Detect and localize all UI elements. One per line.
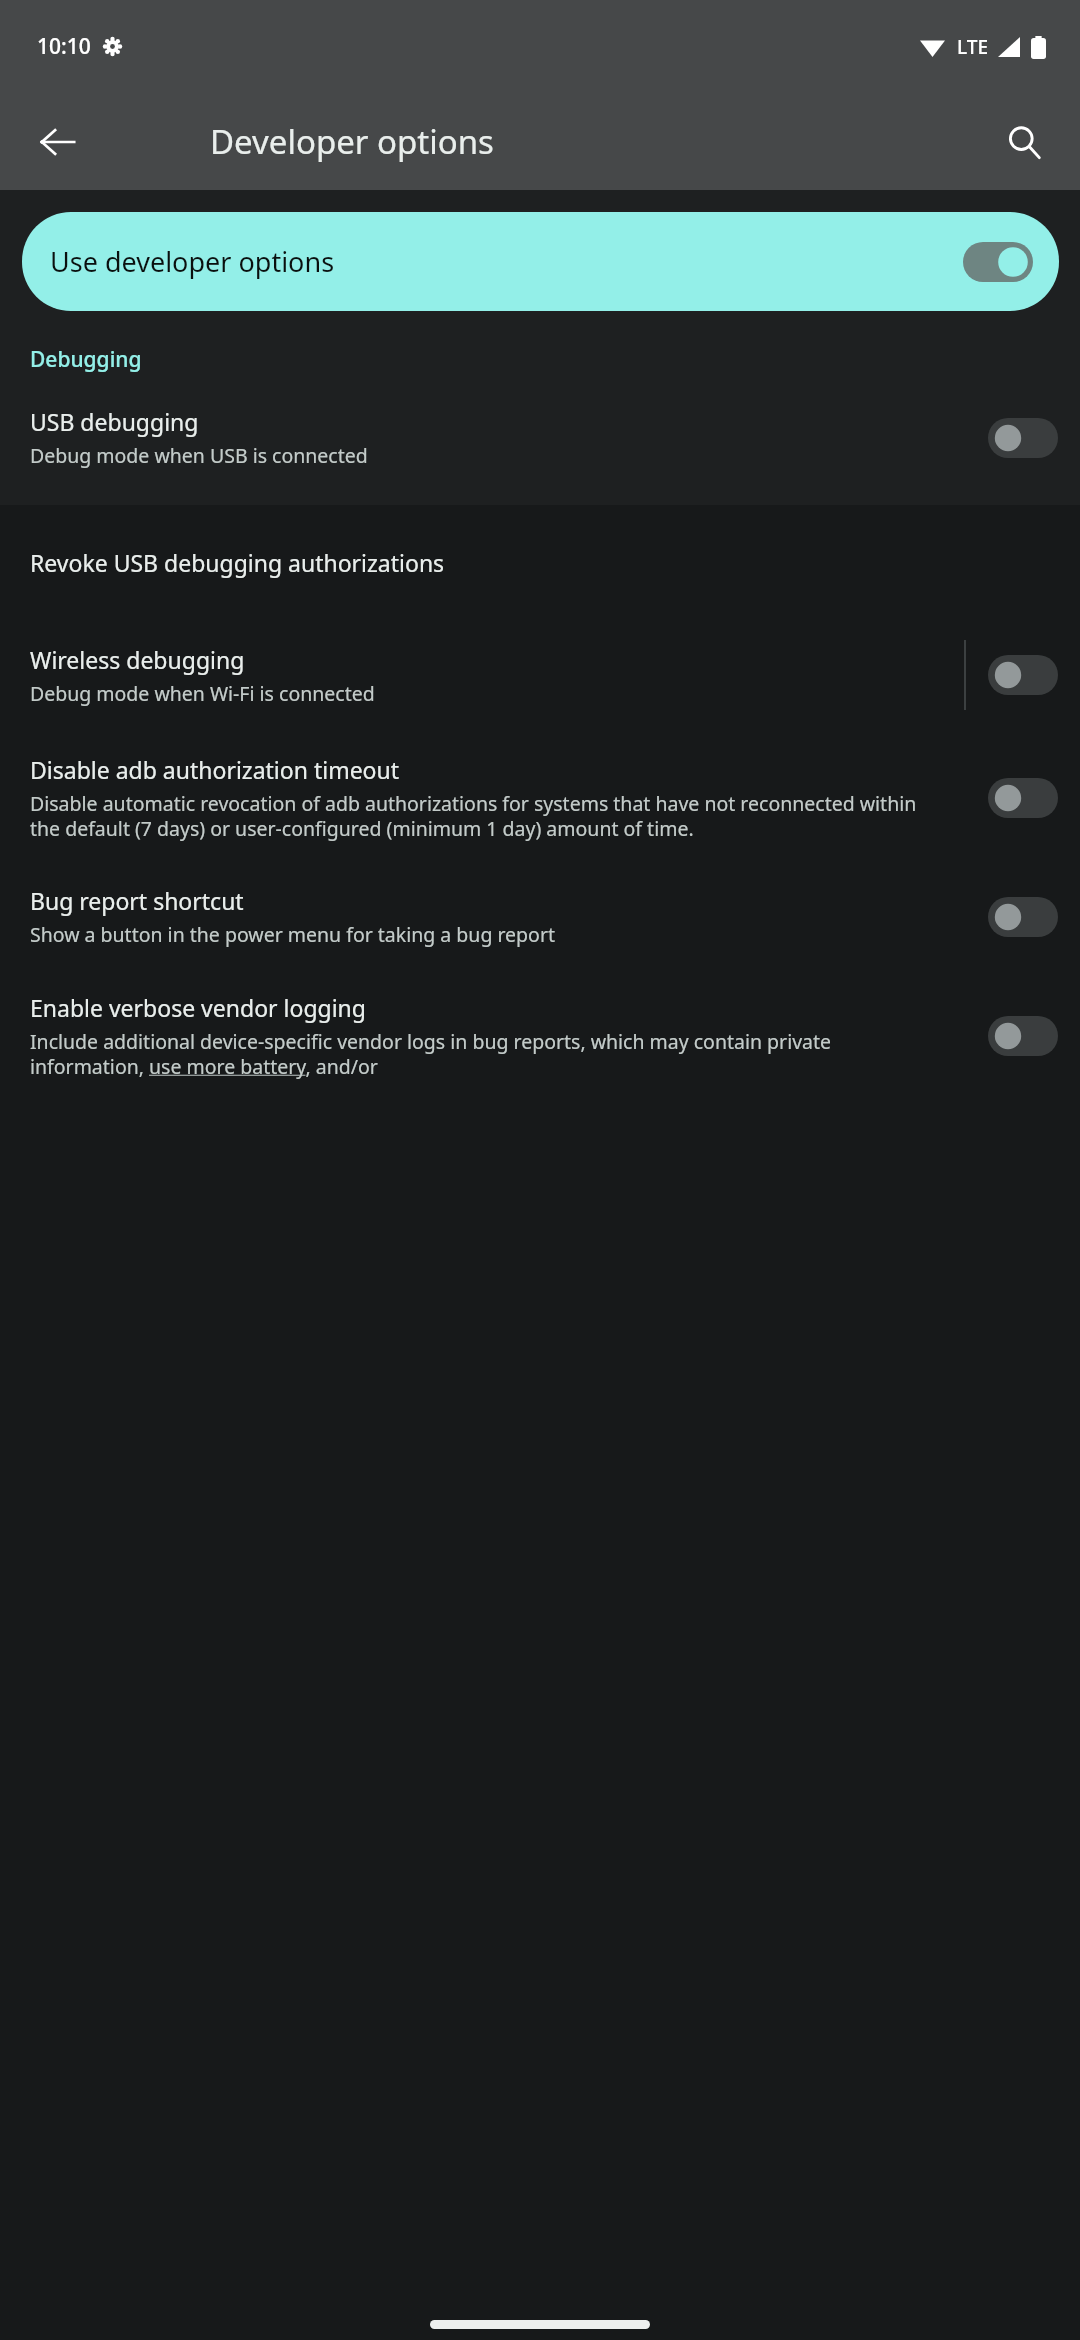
staticText: Wireless debugging <box>30 644 245 675</box>
button[interactable]: Revoke USB debugging authorizations <box>0 505 1080 618</box>
button[interactable]: Wireless debugging <box>0 618 1080 732</box>
staticText: LTE <box>957 34 989 60</box>
staticText: Bug report shortcut <box>30 885 244 916</box>
staticText: Developer options <box>210 119 494 164</box>
staticText: Enable verbose vendor logging <box>30 992 366 1023</box>
button[interactable]: USB debugging <box>0 384 1080 491</box>
staticText: Show a button in the power menu for taki… <box>30 921 555 948</box>
button[interactable]: Back <box>22 106 94 178</box>
button[interactable]: Enable verbose vendor logging <box>0 970 1080 1079</box>
staticText: Debugging <box>30 345 142 374</box>
staticText: Include additional device-specific vendo… <box>30 1028 948 1079</box>
staticText: Disable automatic revocation of adb auth… <box>30 790 948 841</box>
staticText: Use developer options <box>50 243 335 280</box>
staticText: 10:10 <box>37 32 91 61</box>
staticText: USB debugging <box>30 406 199 437</box>
staticText: Revoke USB debugging authorizations <box>30 547 445 578</box>
staticText: Debug mode when Wi-Fi is connected <box>30 680 375 707</box>
button[interactable]: Bug report shortcut <box>0 863 1080 970</box>
button[interactable]: Search <box>988 106 1060 178</box>
staticText: Disable adb authorization timeout <box>30 754 400 785</box>
button[interactable]: Use developer options <box>22 212 1059 311</box>
staticText: Debug mode when USB is connected <box>30 442 368 469</box>
button[interactable]: Disable adb authorization timeout <box>0 732 1080 863</box>
